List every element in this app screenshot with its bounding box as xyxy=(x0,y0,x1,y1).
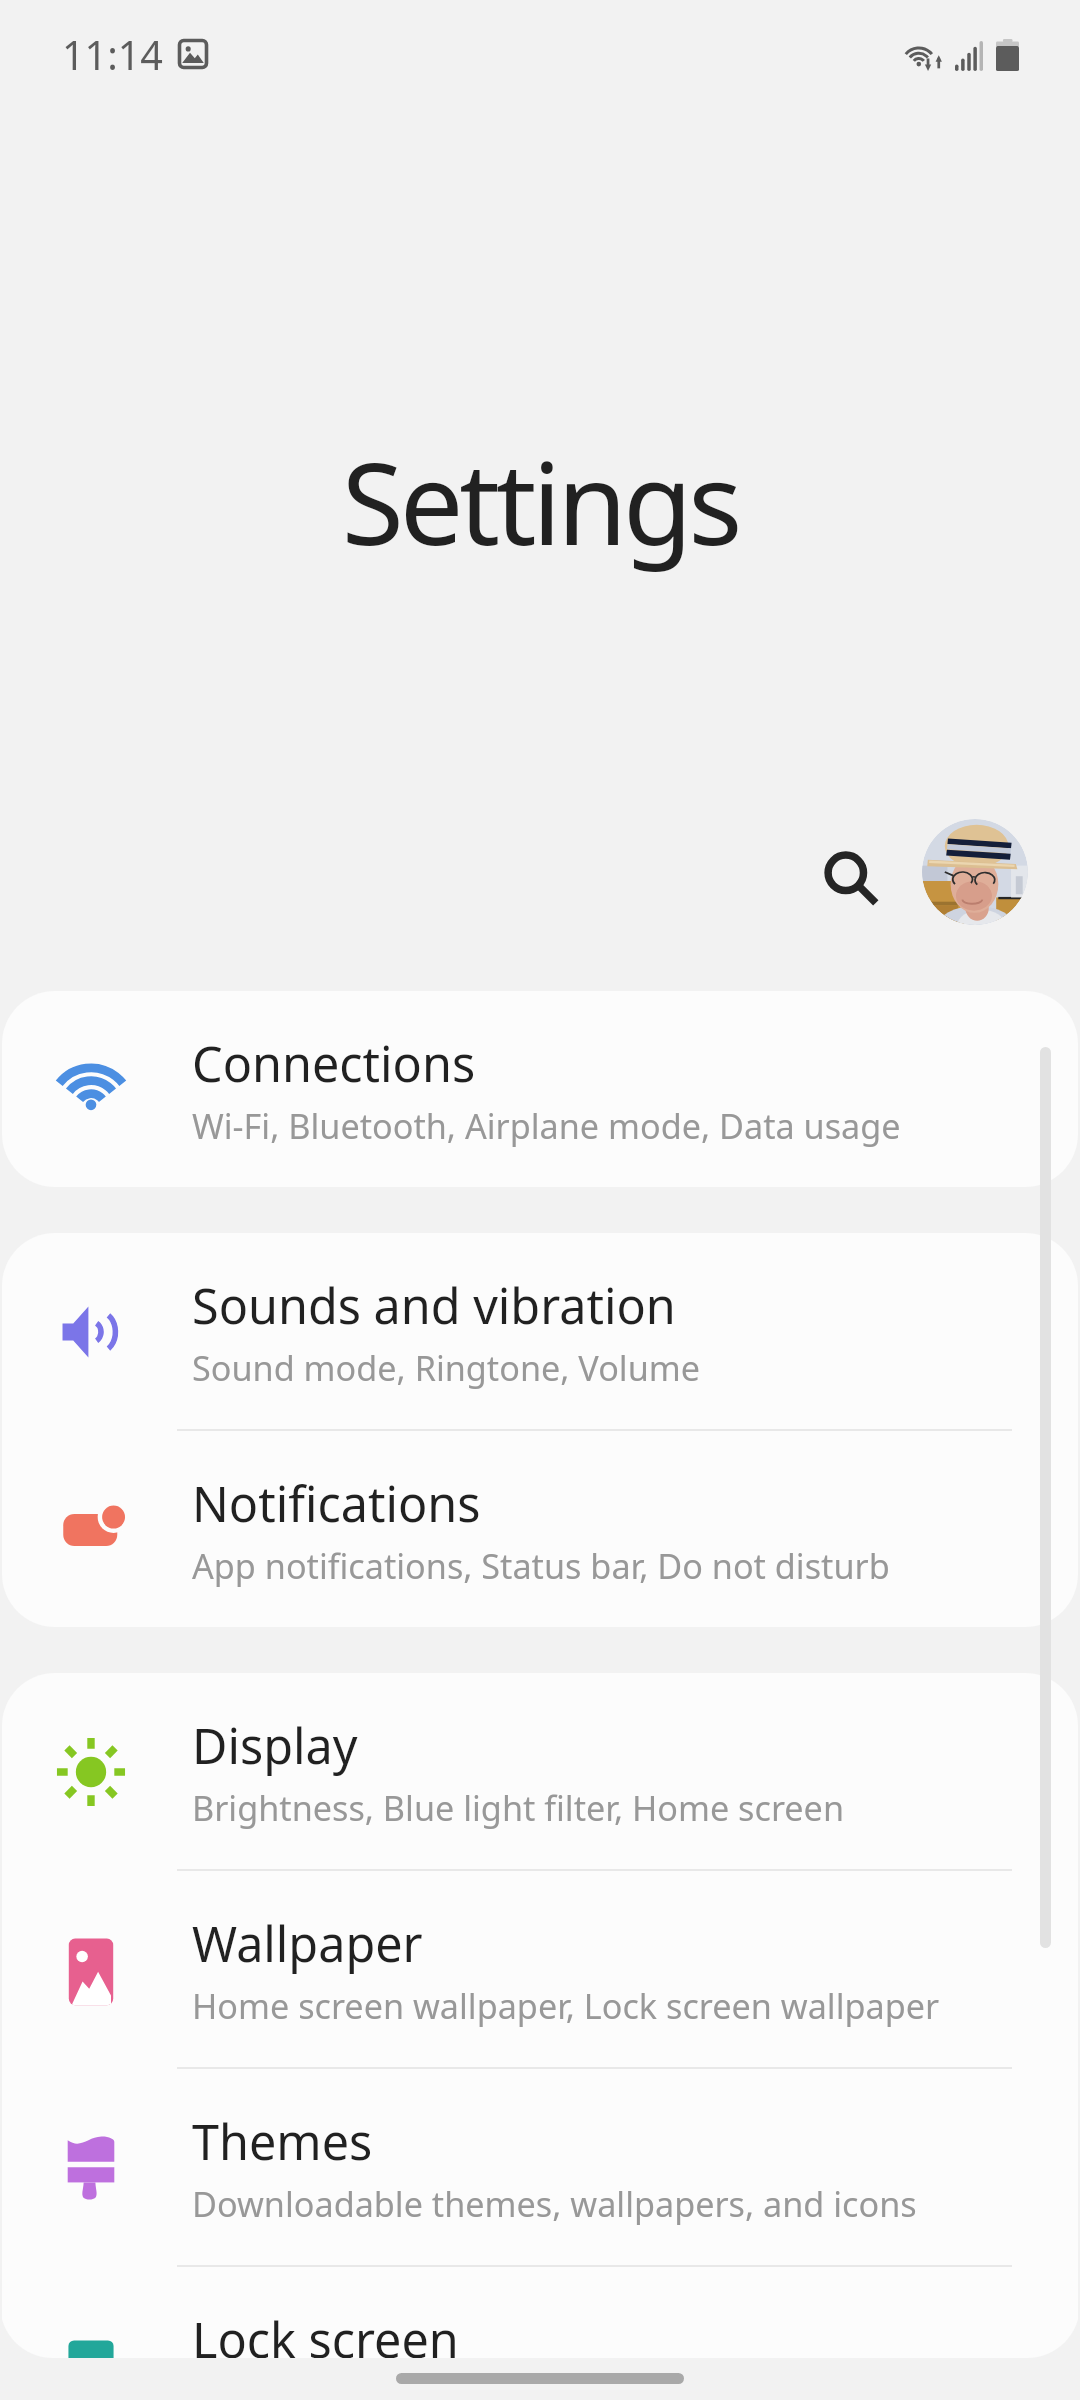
button[interactable]: Themes xyxy=(2,2069,1078,2265)
button[interactable]: Connections xyxy=(2,991,1078,1187)
button[interactable]: Display xyxy=(2,1673,1078,1869)
staticText: Sound mode, Ringtone, Volume xyxy=(192,1344,701,1391)
staticText: Themes xyxy=(192,2108,373,2174)
staticText: Settings xyxy=(0,424,1080,578)
staticText: Wi-Fi, Bluetooth, Airplane mode, Data us… xyxy=(192,1102,901,1149)
staticText: Display xyxy=(192,1712,358,1778)
button[interactable]: Wallpaper xyxy=(2,1871,1078,2067)
staticText: Notifications xyxy=(192,1470,481,1536)
button[interactable]: Lock screen xyxy=(2,2267,1078,2358)
staticText: Sounds and vibration xyxy=(192,1272,676,1338)
button[interactable]: Sounds and vibration xyxy=(2,1233,1078,1429)
button[interactable]: Notifications xyxy=(2,1431,1078,1627)
button[interactable]: Search xyxy=(805,832,900,927)
button[interactable]: Profile xyxy=(922,819,1028,925)
staticText: Downloadable themes, wallpapers, and ico… xyxy=(192,2180,917,2227)
staticText: Lock screen xyxy=(192,2306,459,2358)
staticText: 11:14 xyxy=(62,28,163,82)
staticText: Connections xyxy=(192,1030,476,1096)
staticText: App notifications, Status bar, Do not di… xyxy=(192,1542,890,1589)
staticText: Brightness, Blue light filter, Home scre… xyxy=(192,1784,845,1831)
staticText: Wallpaper xyxy=(192,1910,423,1976)
staticText: Home screen wallpaper, Lock screen wallp… xyxy=(192,1982,940,2029)
